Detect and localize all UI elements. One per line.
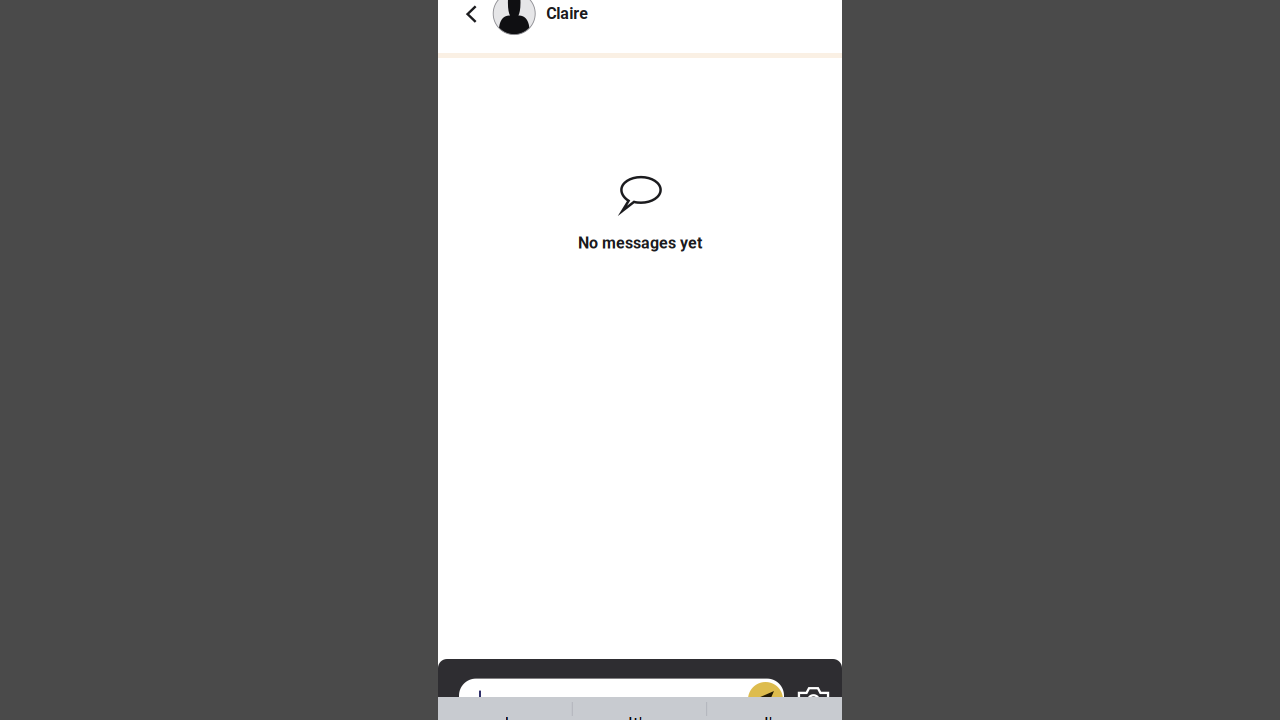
- button[interactable]: Back: [457, 0, 487, 29]
- staticText: I: [504, 713, 509, 720]
- button[interactable]: Camera: [798, 685, 829, 709]
- staticText: No messages yet: [578, 234, 702, 252]
- button[interactable]: It's: [572, 711, 706, 720]
- button[interactable]: Claire: [493, 0, 601, 35]
- staticText: I'm: [764, 713, 787, 720]
- button[interactable]: I'm: [708, 711, 842, 720]
- button[interactable]: Send: [748, 682, 783, 717]
- staticText: Claire: [546, 4, 588, 23]
- button[interactable]: Message: [459, 679, 784, 719]
- staticText: It's: [628, 713, 650, 720]
- button[interactable]: I: [440, 711, 574, 720]
